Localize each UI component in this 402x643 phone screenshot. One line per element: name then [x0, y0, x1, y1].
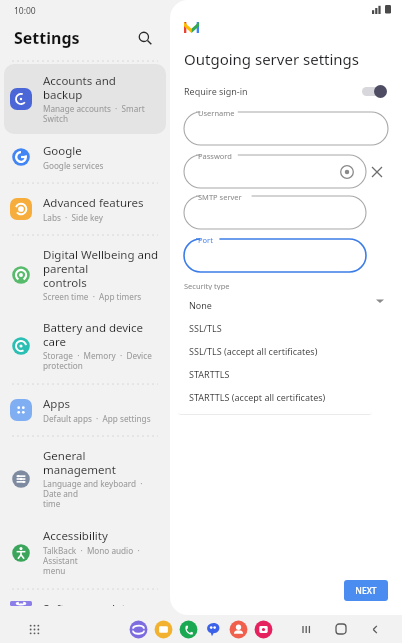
button[interactable]: SSL/TLS — [178, 316, 372, 339]
button[interactable]: Google — [0, 134, 170, 180]
button[interactable]: All apps — [24, 619, 44, 639]
staticText: Software update — [43, 601, 133, 606]
button[interactable]: Accessibility — [0, 519, 170, 586]
button[interactable]: Files — [154, 620, 173, 639]
button[interactable]: STARTTLS (accept all certificates) — [178, 385, 372, 408]
staticText: Require sign-in — [184, 85, 248, 97]
staticText: SSL/TLS — [189, 322, 222, 334]
staticText: Labs · Side key — [43, 212, 103, 223]
staticText: Storage · Memory · Device protection — [43, 350, 160, 372]
staticText: Google services — [43, 160, 104, 171]
button[interactable]: Back — [366, 620, 384, 638]
button[interactable]: Show password — [338, 163, 356, 181]
staticText: Apps — [43, 396, 71, 412]
button[interactable]: SSL/TLS (accept all certificates) — [178, 339, 372, 362]
staticText: Port — [198, 235, 213, 245]
staticText: SSL/TLS (accept all certificates) — [189, 345, 318, 357]
button[interactable]: None — [178, 293, 372, 316]
staticText: STARTTLS — [189, 368, 230, 380]
button[interactable]: Home — [332, 620, 350, 638]
staticText: Accounts and backup — [43, 73, 156, 102]
button[interactable]: Phone — [179, 620, 198, 639]
button[interactable]: Require sign-in — [184, 84, 388, 98]
staticText: Digital Wellbeing and parental controls — [43, 247, 160, 290]
staticText: General management — [43, 448, 160, 477]
staticText: None — [189, 299, 212, 311]
staticText: TalkBack · Mono audio · Assistant menu — [43, 545, 160, 577]
staticText: STARTTLS (accept all certificates) — [189, 391, 326, 403]
staticText: Battery and device care — [43, 320, 160, 349]
button[interactable]: Recents — [298, 620, 316, 638]
staticText: 10:00 — [14, 5, 36, 17]
button[interactable]: Messages — [204, 620, 223, 639]
button[interactable]: Battery and device care — [0, 311, 170, 381]
button[interactable]: Apps — [0, 387, 170, 433]
staticText: Settings — [14, 27, 80, 49]
staticText: Username — [198, 108, 235, 118]
button[interactable]: Search — [134, 27, 156, 49]
staticText: Manage accounts · Smart Switch — [43, 103, 156, 125]
staticText: Security type — [184, 281, 230, 291]
staticText: Google — [43, 143, 82, 159]
staticText: Screen time · App timers — [43, 291, 142, 302]
staticText: Password — [198, 151, 232, 161]
staticText: Language and keyboard · Date and time — [43, 478, 160, 510]
button[interactable]: Internet — [129, 620, 148, 639]
button[interactable]: Digital Wellbeing and parental controls — [0, 238, 170, 311]
button[interactable]: Contacts — [229, 620, 248, 639]
staticText: Default apps · App settings — [43, 413, 151, 424]
staticText: SMTP server — [198, 192, 242, 202]
button[interactable]: Accounts and backup — [4, 64, 166, 134]
button[interactable]: General management — [0, 439, 170, 519]
staticText: Accessibility — [43, 528, 108, 544]
staticText: NEXT — [355, 585, 377, 597]
button[interactable]: Gallery — [254, 620, 273, 639]
button[interactable]: Clear password — [366, 161, 388, 183]
button[interactable]: STARTTLS — [178, 362, 372, 385]
button[interactable]: Software update — [0, 592, 170, 615]
button[interactable]: Advanced features — [0, 186, 170, 232]
button[interactable]: NEXT — [344, 580, 388, 601]
staticText: Outgoing server settings — [184, 49, 360, 69]
staticText: Advanced features — [43, 195, 144, 211]
